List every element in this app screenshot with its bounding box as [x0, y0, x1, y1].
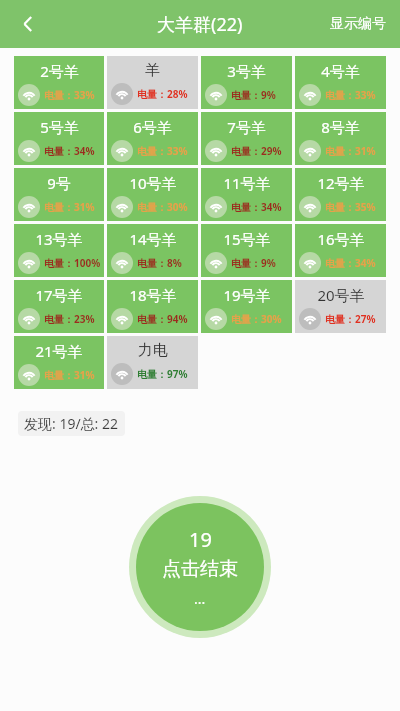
staticText: 电量：94% [137, 312, 188, 326]
staticText: 电量：31% [44, 200, 95, 214]
staticText: 羊 [145, 61, 160, 80]
staticText: 电量：33% [325, 88, 376, 102]
staticText: 电量：34% [231, 200, 282, 214]
button[interactable]: 5号羊 [14, 112, 104, 165]
button[interactable]: 17号羊 [14, 280, 104, 333]
button[interactable]: 13号羊 [14, 224, 104, 277]
button[interactable]: 11号羊 [201, 168, 292, 221]
staticText: 电量：9% [231, 256, 276, 270]
button[interactable]: 10号羊 [107, 168, 198, 221]
button[interactable]: 2号羊 [14, 56, 104, 109]
button[interactable]: 9号 [14, 168, 104, 221]
staticText: 8号羊 [321, 117, 360, 137]
staticText: 17号羊 [35, 285, 83, 305]
staticText: 2号羊 [40, 61, 79, 81]
staticText: 电量：100% [44, 256, 101, 270]
button[interactable]: 6号羊 [107, 112, 198, 165]
staticText: 13号羊 [35, 229, 83, 249]
staticText: 电量：35% [325, 200, 376, 214]
staticText: 电量：27% [325, 312, 376, 326]
button[interactable]: 4号羊 [295, 56, 386, 109]
staticText: 19号羊 [223, 285, 271, 305]
staticText: 11号羊 [223, 173, 271, 193]
staticText: 21号羊 [35, 341, 83, 361]
staticText: 点击结束 [162, 557, 238, 581]
staticText: 电量：97% [137, 367, 188, 381]
button[interactable]: 21号羊 [14, 336, 104, 389]
button[interactable]: 力电 [107, 336, 198, 389]
staticText: ... [194, 589, 206, 608]
staticText: 15号羊 [223, 229, 271, 249]
staticText: 电量：30% [231, 312, 282, 326]
button[interactable]: 14号羊 [107, 224, 198, 277]
button[interactable]: 3号羊 [201, 56, 292, 109]
staticText: 电量：23% [44, 312, 95, 326]
staticText: 电量：28% [137, 87, 188, 101]
staticText: 大羊群(22) [157, 12, 243, 37]
staticText: 18号羊 [129, 285, 177, 305]
button[interactable]: 8号羊 [295, 112, 386, 165]
button[interactable]: 羊 [107, 56, 198, 109]
button[interactable]: 18号羊 [107, 280, 198, 333]
button[interactable]: 19号羊 [201, 280, 292, 333]
staticText: 6号羊 [133, 117, 172, 137]
staticText: 10号羊 [129, 173, 177, 193]
button[interactable]: 7号羊 [201, 112, 292, 165]
staticText: 9号 [47, 173, 71, 193]
staticText: 电量：31% [44, 368, 95, 382]
staticText: 电量：30% [137, 200, 188, 214]
staticText: 19 [189, 526, 212, 553]
staticText: 电量：8% [137, 256, 182, 270]
staticText: 20号羊 [317, 285, 365, 305]
button[interactable]: 12号羊 [295, 168, 386, 221]
staticText: 12号羊 [317, 173, 365, 193]
button[interactable]: 19 [136, 503, 264, 631]
staticText: 3号羊 [227, 61, 266, 81]
button[interactable]: 15号羊 [201, 224, 292, 277]
staticText: 电量：33% [44, 88, 95, 102]
staticText: 5号羊 [40, 117, 79, 137]
staticText: 电量：31% [325, 144, 376, 158]
staticText: 电量：33% [137, 144, 188, 158]
staticText: 力电 [138, 341, 168, 360]
staticText: 7号羊 [227, 117, 266, 137]
staticText: 发现: 19/总: 22 [24, 414, 119, 433]
button[interactable]: 16号羊 [295, 224, 386, 277]
staticText: 电量：9% [231, 88, 276, 102]
staticText: 电量：34% [44, 144, 95, 158]
staticText: 14号羊 [129, 229, 177, 249]
button[interactable]: Back [6, 2, 50, 46]
staticText: 电量：29% [231, 144, 282, 158]
staticText: 电量：34% [325, 256, 376, 270]
button[interactable]: 显示编号 [326, 9, 390, 39]
staticText: 4号羊 [321, 61, 360, 81]
button[interactable]: 20号羊 [295, 280, 386, 333]
staticText: 显示编号 [330, 15, 386, 33]
staticText: 16号羊 [317, 229, 365, 249]
